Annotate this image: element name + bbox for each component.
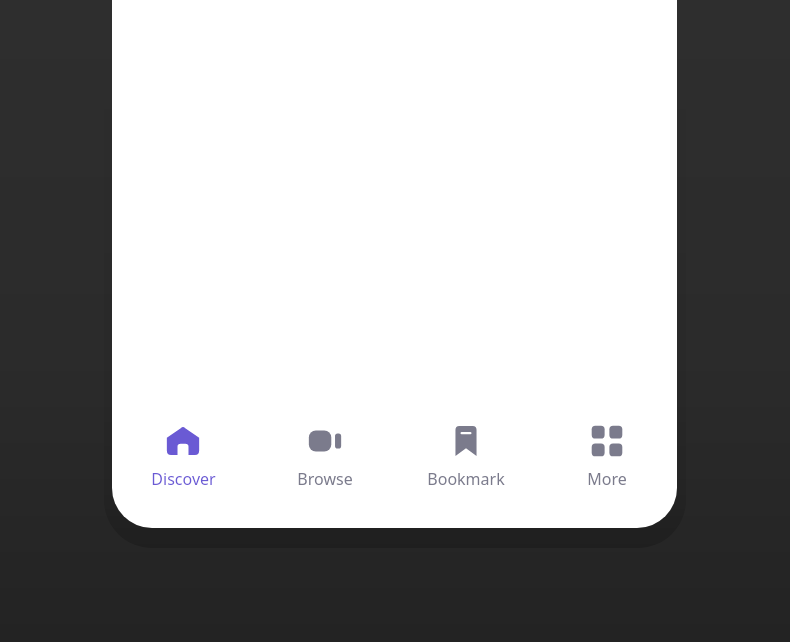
button[interactable]: Browse	[254, 412, 395, 498]
staticText: More	[587, 468, 627, 490]
staticText: Discover	[151, 468, 216, 490]
other: Bookmark	[449, 424, 483, 458]
staticText: Bookmark	[427, 468, 505, 490]
other: Discover	[166, 424, 200, 458]
button[interactable]: Discover	[112, 412, 254, 498]
button[interactable]: More	[536, 412, 677, 498]
other: Browse	[308, 424, 342, 458]
other: More	[590, 424, 624, 458]
staticText: Browse	[297, 468, 353, 490]
button[interactable]: Bookmark	[395, 412, 536, 498]
